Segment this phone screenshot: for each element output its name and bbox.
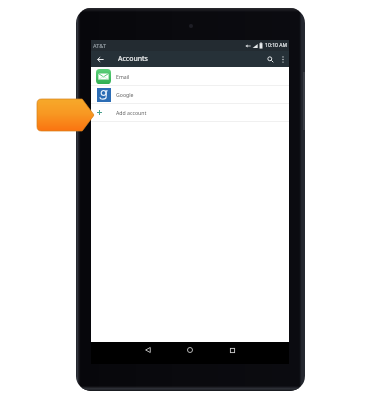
staticText: Email [116, 73, 130, 80]
staticText: 10:10 AM [265, 42, 288, 49]
staticText: Add account [116, 109, 147, 116]
button[interactable]: More options [277, 54, 288, 65]
staticText: Accounts [118, 54, 148, 64]
button[interactable]: Callout arrow pointing to Add account [37, 99, 95, 131]
button[interactable]: Google [91, 86, 289, 104]
button[interactable]: Recents [225, 343, 239, 357]
staticText: AT&T [93, 42, 107, 50]
button[interactable]: Back [141, 343, 155, 357]
button[interactable]: Email [91, 67, 289, 86]
button[interactable]: Search [264, 53, 277, 66]
button[interactable]: Home [183, 343, 197, 357]
button[interactable]: Navigate up [94, 53, 107, 66]
button[interactable]: Add account [91, 104, 289, 122]
staticText: Google [116, 91, 134, 98]
